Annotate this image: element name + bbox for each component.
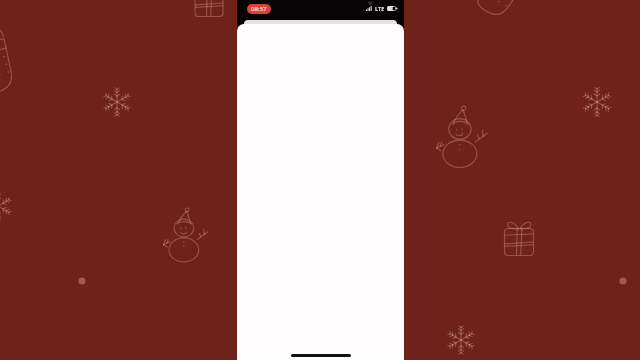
button[interactable]: 08:57: [247, 4, 271, 14]
staticText: LTE: [375, 5, 385, 12]
button[interactable]: Status icons: signal, LTE, battery: [366, 5, 397, 12]
button[interactable]: Home gesture bar: [291, 354, 351, 357]
staticText: 08:57: [251, 5, 267, 13]
